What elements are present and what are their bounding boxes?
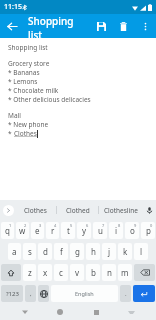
- staticText: w: [19, 225, 26, 236]
- button[interactable]: z: [23, 264, 36, 281]
- button[interactable]: c: [54, 264, 68, 281]
- staticText: * Bananas: [8, 68, 40, 77]
- staticText: Clothes: [24, 206, 47, 215]
- button[interactable]: Clothed: [57, 200, 98, 220]
- staticText: 3: [39, 223, 42, 228]
- button[interactable]: r: [46, 222, 59, 239]
- button[interactable]: English: [51, 285, 118, 302]
- button[interactable]: Clothesline: [99, 200, 142, 220]
- button[interactable]: Save: [90, 15, 112, 37]
- button[interactable]: More suggestions: [3, 205, 14, 216]
- button[interactable]: Clothes: [14, 200, 56, 220]
- staticText: e: [35, 225, 40, 236]
- button[interactable]: e: [31, 222, 44, 239]
- button[interactable]: More options: [134, 15, 156, 37]
- staticText: 5: [70, 223, 73, 228]
- button[interactable]: j: [102, 243, 116, 260]
- button[interactable]: Recents: [85, 304, 107, 320]
- staticText: 8: [118, 223, 121, 228]
- staticText: l: [140, 246, 143, 257]
- button[interactable]: Shift: [1, 264, 21, 281]
- staticText: a: [12, 246, 17, 257]
- staticText: * Lemons: [8, 77, 38, 86]
- button[interactable]: y: [77, 222, 91, 239]
- button[interactable]: Back: [0, 14, 24, 38]
- staticText: Clothed: [66, 206, 90, 215]
- button[interactable]: d: [38, 243, 52, 260]
- button[interactable]: Voice input: [142, 200, 156, 220]
- staticText: k: [123, 246, 128, 257]
- staticText: v: [75, 267, 80, 278]
- staticText: Shopping list: [28, 14, 90, 38]
- staticText: Clothes: [14, 129, 37, 138]
- button[interactable]: ,: [25, 285, 36, 302]
- button[interactable]: Backspace: [134, 264, 155, 281]
- button[interactable]: p: [141, 222, 155, 239]
- button[interactable]: i: [109, 222, 123, 239]
- button[interactable]: w: [16, 222, 29, 239]
- staticText: s: [28, 246, 32, 257]
- staticText: ?123: [6, 290, 19, 298]
- staticText: Clothesline: [104, 206, 138, 215]
- staticText: Shopping list: [8, 43, 48, 52]
- button[interactable]: a: [8, 243, 21, 260]
- staticText: 1: [9, 223, 12, 228]
- button[interactable]: t: [61, 222, 75, 239]
- staticText: t: [67, 225, 70, 236]
- staticText: g: [75, 246, 80, 257]
- staticText: * New phone: [8, 120, 49, 129]
- staticText: j: [108, 246, 111, 257]
- button[interactable]: q: [1, 222, 14, 239]
- staticText: n: [107, 267, 112, 278]
- button[interactable]: o: [125, 222, 139, 239]
- staticText: q: [5, 225, 10, 236]
- staticText: Grocery store: [8, 59, 50, 68]
- button[interactable]: l: [134, 243, 148, 260]
- staticText: 0: [150, 223, 153, 228]
- staticText: p: [146, 225, 151, 236]
- staticText: 11:15: [4, 2, 22, 12]
- staticText: 9: [134, 223, 137, 228]
- staticText: z: [28, 267, 32, 278]
- button[interactable]: v: [70, 264, 84, 281]
- staticText: d: [43, 246, 48, 257]
- button[interactable]: f: [54, 243, 68, 260]
- staticText: * Chocolate milk: [8, 86, 59, 95]
- staticText: m: [121, 267, 129, 278]
- staticText: *: [8, 129, 14, 138]
- staticText: i: [115, 225, 118, 236]
- button[interactable]: s: [23, 243, 36, 260]
- button[interactable]: Delete: [112, 15, 134, 37]
- button[interactable]: m: [118, 264, 132, 281]
- button[interactable]: h: [86, 243, 100, 260]
- button[interactable]: Home: [49, 304, 71, 320]
- staticText: f: [60, 246, 63, 257]
- staticText: 2: [24, 223, 27, 228]
- staticText: 6: [86, 223, 89, 228]
- staticText: English: [75, 290, 94, 297]
- button[interactable]: k: [118, 243, 132, 260]
- staticText: * Other delicious delicacies: [8, 95, 91, 104]
- button[interactable]: ?123: [1, 285, 23, 302]
- button[interactable]: Enter: [133, 285, 155, 302]
- staticText: r: [51, 225, 55, 236]
- button[interactable]: b: [86, 264, 100, 281]
- button[interactable]: n: [102, 264, 116, 281]
- button[interactable]: Back: [14, 304, 36, 320]
- staticText: u: [98, 225, 103, 236]
- staticText: .: [125, 290, 127, 298]
- staticText: h: [91, 246, 96, 257]
- button[interactable]: u: [93, 222, 107, 239]
- button[interactable]: g: [70, 243, 84, 260]
- button[interactable]: x: [38, 264, 52, 281]
- button[interactable]: Change language: [38, 285, 49, 302]
- staticText: x: [43, 267, 48, 278]
- staticText: c: [59, 267, 63, 278]
- staticText: 7: [102, 223, 105, 228]
- staticText: y: [82, 225, 87, 236]
- button[interactable]: .: [120, 285, 131, 302]
- staticText: Mall: [8, 111, 21, 120]
- staticText: o: [130, 225, 135, 236]
- staticText: 4: [54, 223, 57, 228]
- button[interactable]: Hide keyboard: [120, 304, 142, 320]
